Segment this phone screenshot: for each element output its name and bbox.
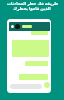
other: Back: [11, 25, 14, 28]
button[interactable]: [10, 84, 42, 89]
button[interactable]: Send: [44, 82, 50, 88]
staticText: الذين قاموا بحظرك: [13, 6, 51, 11]
staticText: طريقة فك حظر المحادثات: [7, 1, 58, 6]
